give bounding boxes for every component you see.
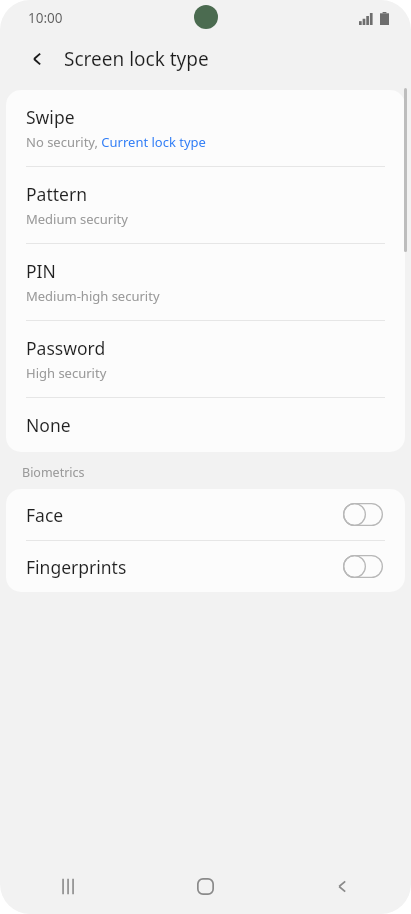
button[interactable]: PIN: [6, 244, 405, 320]
other: Toggle: [343, 503, 383, 526]
staticText: Fingerprints: [26, 555, 343, 579]
staticText: No security, Current lock type: [26, 133, 206, 151]
other: Toggle: [343, 555, 383, 578]
button[interactable]: Back: [18, 39, 58, 79]
staticText: Medium-high security: [26, 287, 160, 305]
staticText: Screen lock type: [64, 46, 209, 72]
button[interactable]: Home: [137, 858, 274, 914]
staticText: High security: [26, 364, 107, 382]
button[interactable]: Back: [274, 858, 411, 914]
button[interactable]: Fingerprints: [6, 541, 405, 592]
button[interactable]: None: [6, 398, 405, 452]
staticText: Biometrics: [22, 464, 85, 481]
button[interactable]: Recent apps: [0, 858, 137, 914]
staticText: PIN: [26, 259, 56, 283]
staticText: 10:00: [28, 9, 63, 27]
staticText: Face: [26, 503, 343, 527]
staticText: Medium security: [26, 210, 128, 228]
staticText: None: [26, 413, 71, 437]
staticText: Swipe: [26, 105, 75, 129]
staticText: Password: [26, 336, 106, 360]
button[interactable]: Face: [6, 489, 405, 540]
staticText: Pattern: [26, 182, 87, 206]
button[interactable]: Pattern: [6, 167, 405, 243]
button[interactable]: Password: [6, 321, 405, 397]
button[interactable]: Swipe: [6, 90, 405, 166]
